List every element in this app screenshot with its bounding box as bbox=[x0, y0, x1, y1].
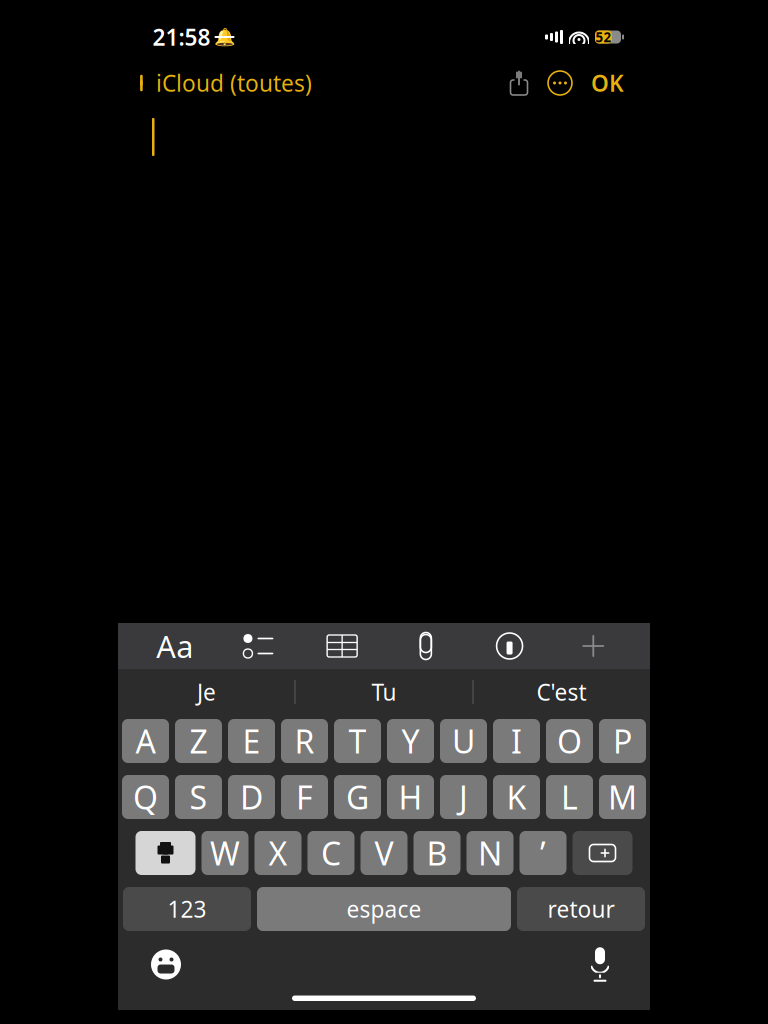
button[interactable]: Format du texte bbox=[148, 624, 202, 668]
button[interactable]: Tu bbox=[295, 670, 472, 714]
staticText: Aa bbox=[156, 626, 193, 666]
staticText: Je bbox=[197, 677, 216, 707]
button[interactable]: V bbox=[360, 831, 407, 875]
button[interactable]: espace bbox=[257, 887, 511, 931]
button[interactable]: Je bbox=[118, 670, 294, 714]
button[interactable]: F bbox=[281, 775, 328, 819]
button[interactable]: U bbox=[440, 719, 487, 763]
button[interactable]: N bbox=[466, 831, 513, 875]
staticText: T bbox=[348, 720, 366, 762]
button[interactable]: Tableau bbox=[315, 624, 369, 668]
staticText: S bbox=[189, 776, 207, 818]
staticText: C'est bbox=[536, 677, 586, 707]
button[interactable]: ’ bbox=[519, 831, 566, 875]
button[interactable]: retour bbox=[517, 887, 645, 931]
button[interactable]: iCloud (toutes) bbox=[118, 60, 312, 106]
button[interactable]: T bbox=[334, 719, 381, 763]
button[interactable]: G bbox=[334, 775, 381, 819]
staticText: Tu bbox=[371, 677, 396, 707]
staticText: X bbox=[268, 832, 287, 874]
button[interactable]: Majuscule bbox=[135, 831, 195, 875]
button[interactable]: Liste de pointage bbox=[231, 624, 285, 668]
button[interactable]: C'est bbox=[473, 670, 649, 714]
button[interactable]: P bbox=[599, 719, 646, 763]
button[interactable]: J bbox=[440, 775, 487, 819]
staticText: P bbox=[613, 720, 632, 762]
button[interactable]: L bbox=[546, 775, 593, 819]
button[interactable]: Partager bbox=[499, 63, 539, 103]
staticText: C bbox=[321, 832, 341, 874]
staticText: U bbox=[452, 720, 475, 762]
button[interactable]: I bbox=[493, 719, 540, 763]
staticText: D bbox=[240, 776, 263, 818]
button[interactable]: H bbox=[387, 775, 434, 819]
staticText: Y bbox=[401, 720, 419, 762]
button[interactable]: C bbox=[307, 831, 354, 875]
button[interactable]: B bbox=[413, 831, 460, 875]
staticText: W bbox=[210, 832, 240, 874]
staticText: OK bbox=[591, 68, 624, 98]
staticText: 52 bbox=[595, 28, 611, 46]
staticText: retour bbox=[547, 894, 614, 924]
staticText: Q bbox=[133, 776, 158, 818]
staticText: E bbox=[242, 720, 260, 762]
button[interactable]: D bbox=[228, 775, 275, 819]
staticText: L bbox=[561, 776, 578, 818]
staticText: G bbox=[346, 776, 369, 818]
button[interactable]: M bbox=[599, 775, 646, 819]
button[interactable]: Supprimer bbox=[572, 831, 632, 875]
button[interactable]: Q bbox=[122, 775, 169, 819]
staticText: A bbox=[135, 720, 155, 762]
button[interactable]: E bbox=[228, 719, 275, 763]
staticText: N bbox=[478, 832, 502, 874]
staticText: 123 bbox=[167, 894, 206, 924]
button[interactable]: S bbox=[175, 775, 222, 819]
staticText: 🔔 bbox=[213, 27, 235, 47]
button[interactable]: Y bbox=[387, 719, 434, 763]
staticText: I bbox=[511, 720, 522, 762]
button[interactable]: Dictée bbox=[574, 942, 626, 986]
staticText: Z bbox=[189, 720, 207, 762]
staticText: V bbox=[374, 832, 393, 874]
button[interactable]: Annotation bbox=[483, 624, 537, 668]
staticText: 21:58 bbox=[152, 22, 210, 52]
button[interactable]: 123 bbox=[123, 887, 251, 931]
button[interactable]: X bbox=[254, 831, 301, 875]
button[interactable]: Plus d'options bbox=[539, 63, 581, 103]
staticText: M bbox=[608, 776, 637, 818]
staticText: espace bbox=[346, 894, 421, 924]
button[interactable]: Emoji bbox=[140, 942, 192, 986]
staticText: iCloud (toutes) bbox=[156, 68, 312, 98]
staticText: ’ bbox=[540, 832, 546, 874]
button[interactable]: R bbox=[281, 719, 328, 763]
staticText: O bbox=[557, 720, 582, 762]
button[interactable]: Z bbox=[175, 719, 222, 763]
button[interactable]: Fermer bbox=[566, 624, 620, 668]
staticText: K bbox=[506, 776, 526, 818]
button[interactable]: W bbox=[201, 831, 248, 875]
button[interactable]: O bbox=[546, 719, 593, 763]
staticText: H bbox=[398, 776, 422, 818]
button[interactable]: K bbox=[493, 775, 540, 819]
button[interactable]: A bbox=[122, 719, 169, 763]
button[interactable]: Joindre bbox=[399, 624, 453, 668]
button[interactable]: OK bbox=[581, 60, 634, 106]
staticText: F bbox=[296, 776, 313, 818]
staticText: R bbox=[294, 720, 314, 762]
staticText: B bbox=[426, 832, 447, 874]
staticText: J bbox=[459, 776, 468, 818]
